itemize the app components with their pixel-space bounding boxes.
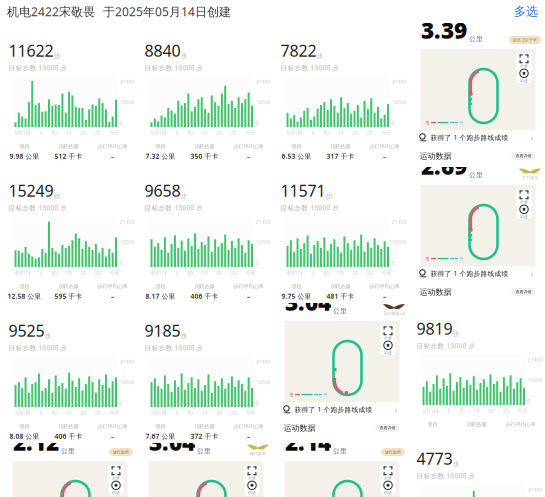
button[interactable]: 多选 bbox=[514, 4, 538, 19]
staticText: 21400 bbox=[255, 358, 270, 365]
staticText: 五月挑战 x2 bbox=[383, 311, 404, 316]
staticText: 目标步数 10000 步 bbox=[8, 203, 67, 212]
staticText: 步行平均心率 bbox=[233, 143, 263, 150]
staticText: 10 bbox=[187, 269, 193, 276]
staticText: 10 bbox=[51, 269, 57, 276]
button[interactable]: 11571 bbox=[274, 163, 406, 299]
staticText: 目标步数 10000 步 bbox=[144, 63, 203, 72]
staticText: 公里 bbox=[61, 447, 75, 455]
staticText: 消耗热量 bbox=[194, 143, 214, 150]
button[interactable]: 轨迹 bbox=[244, 480, 259, 495]
button[interactable]: 4773 bbox=[410, 431, 542, 497]
staticText: 10000 bbox=[255, 379, 270, 386]
staticText: 运动数据 bbox=[419, 287, 451, 297]
staticText: 10000 bbox=[391, 99, 406, 106]
button[interactable]: 8840 bbox=[138, 23, 270, 159]
button[interactable]: 3.39 bbox=[410, 23, 542, 145]
staticText: 10000 bbox=[255, 99, 270, 106]
staticText: 步行平均心率 bbox=[233, 423, 263, 430]
button[interactable]: 全屏 bbox=[108, 465, 123, 480]
button[interactable]: 15249 bbox=[2, 163, 134, 299]
staticText: 5 bbox=[39, 129, 42, 136]
staticText: 15 bbox=[65, 409, 71, 416]
staticText: 目标步数 10000 步 bbox=[8, 63, 67, 72]
button[interactable]: 查看详情 bbox=[375, 424, 399, 432]
staticText: 11622 bbox=[8, 40, 53, 61]
staticText: 9185 bbox=[144, 320, 180, 341]
staticText: 7.67 公里 bbox=[145, 432, 175, 441]
staticText: 15 bbox=[65, 129, 71, 136]
staticText: 20 bbox=[352, 269, 358, 276]
staticText: 快 bbox=[323, 392, 327, 397]
button[interactable]: 3.04 bbox=[274, 303, 406, 417]
button[interactable]: 2.69 bbox=[410, 167, 542, 281]
staticText: 3月1日 bbox=[14, 409, 30, 416]
staticText: 步 bbox=[45, 332, 52, 340]
button[interactable]: 2.12 bbox=[2, 443, 134, 497]
staticText: 全屏 bbox=[384, 336, 392, 341]
button[interactable]: 3.04 bbox=[138, 443, 270, 497]
staticText: 4月1日 bbox=[150, 269, 166, 276]
staticText: 公里 bbox=[333, 307, 347, 315]
staticText: 4773 bbox=[416, 448, 452, 469]
staticText: 10000 bbox=[255, 239, 270, 246]
staticText: 21400 bbox=[527, 486, 542, 493]
staticText: 里程 bbox=[19, 423, 29, 430]
staticText: 机电2422宋敬畏 于2025年05月14日创建 bbox=[7, 3, 231, 19]
button[interactable]: 轨迹 bbox=[516, 204, 531, 219]
button[interactable]: 轨迹 bbox=[516, 68, 531, 83]
staticText: 今天 bbox=[245, 409, 255, 416]
button[interactable]: 全屏 bbox=[244, 465, 259, 480]
staticText: 2.12 bbox=[13, 427, 59, 457]
staticText: 全屏 bbox=[112, 476, 120, 481]
button[interactable]: 7822 bbox=[274, 23, 406, 159]
staticText: 25 bbox=[503, 407, 509, 414]
staticText: 步 bbox=[181, 52, 188, 60]
button[interactable]: 轨迹 bbox=[380, 480, 395, 495]
button[interactable]: 全屏 bbox=[516, 189, 531, 204]
button[interactable]: 轨迹 bbox=[108, 480, 123, 495]
button[interactable]: 9658 bbox=[138, 163, 270, 299]
button[interactable]: 9819 bbox=[410, 301, 542, 437]
staticText: 里程 bbox=[155, 283, 165, 290]
staticText: 步行平均心率 bbox=[505, 421, 535, 428]
button[interactable]: 全屏 bbox=[516, 53, 531, 68]
staticText: 目标步数 10000 步 bbox=[8, 343, 67, 352]
staticText: 公里 bbox=[469, 35, 483, 43]
staticText: 15 bbox=[65, 269, 71, 276]
button[interactable]: 轨迹 bbox=[380, 340, 395, 355]
staticText: 15 bbox=[473, 407, 479, 414]
button[interactable]: 9525 bbox=[2, 303, 134, 439]
staticText: 主力成员 bbox=[522, 175, 538, 180]
button[interactable]: 11622 bbox=[2, 23, 134, 159]
staticText: 步行平均心率 bbox=[233, 283, 263, 290]
staticText: 轨迹 bbox=[384, 350, 392, 355]
staticText: 5 bbox=[175, 129, 178, 136]
staticText: 20 bbox=[216, 129, 222, 136]
button[interactable]: 2.14 bbox=[274, 443, 406, 497]
staticText: 里程 bbox=[291, 283, 301, 290]
staticText: 查看详情 bbox=[515, 153, 531, 158]
button[interactable]: 全屏 bbox=[380, 325, 395, 340]
staticText: 21400 bbox=[255, 78, 270, 85]
staticText: 目标步数 10000 步 bbox=[416, 471, 475, 480]
button[interactable]: 全屏 bbox=[380, 465, 395, 480]
staticText: – bbox=[247, 432, 250, 441]
button[interactable]: 查看详情 bbox=[511, 152, 535, 160]
staticText: 25 bbox=[367, 269, 373, 276]
staticText: 10 bbox=[323, 129, 329, 136]
staticText: 20 bbox=[80, 269, 86, 276]
staticText: 8.08 公里 bbox=[9, 432, 39, 441]
staticText: 10000 bbox=[119, 379, 134, 386]
button[interactable]: 9185 bbox=[138, 303, 270, 439]
staticText: 公里 bbox=[469, 171, 483, 179]
staticText: 今天 bbox=[245, 269, 255, 276]
staticText: 512 千卡 bbox=[54, 152, 82, 161]
staticText: – bbox=[247, 152, 250, 161]
button[interactable]: 查看详情 bbox=[511, 288, 535, 296]
staticText: 5 bbox=[311, 129, 314, 136]
staticText: 里程 bbox=[291, 143, 301, 150]
staticText: 10 bbox=[51, 129, 57, 136]
staticText: 慢 bbox=[289, 392, 293, 397]
